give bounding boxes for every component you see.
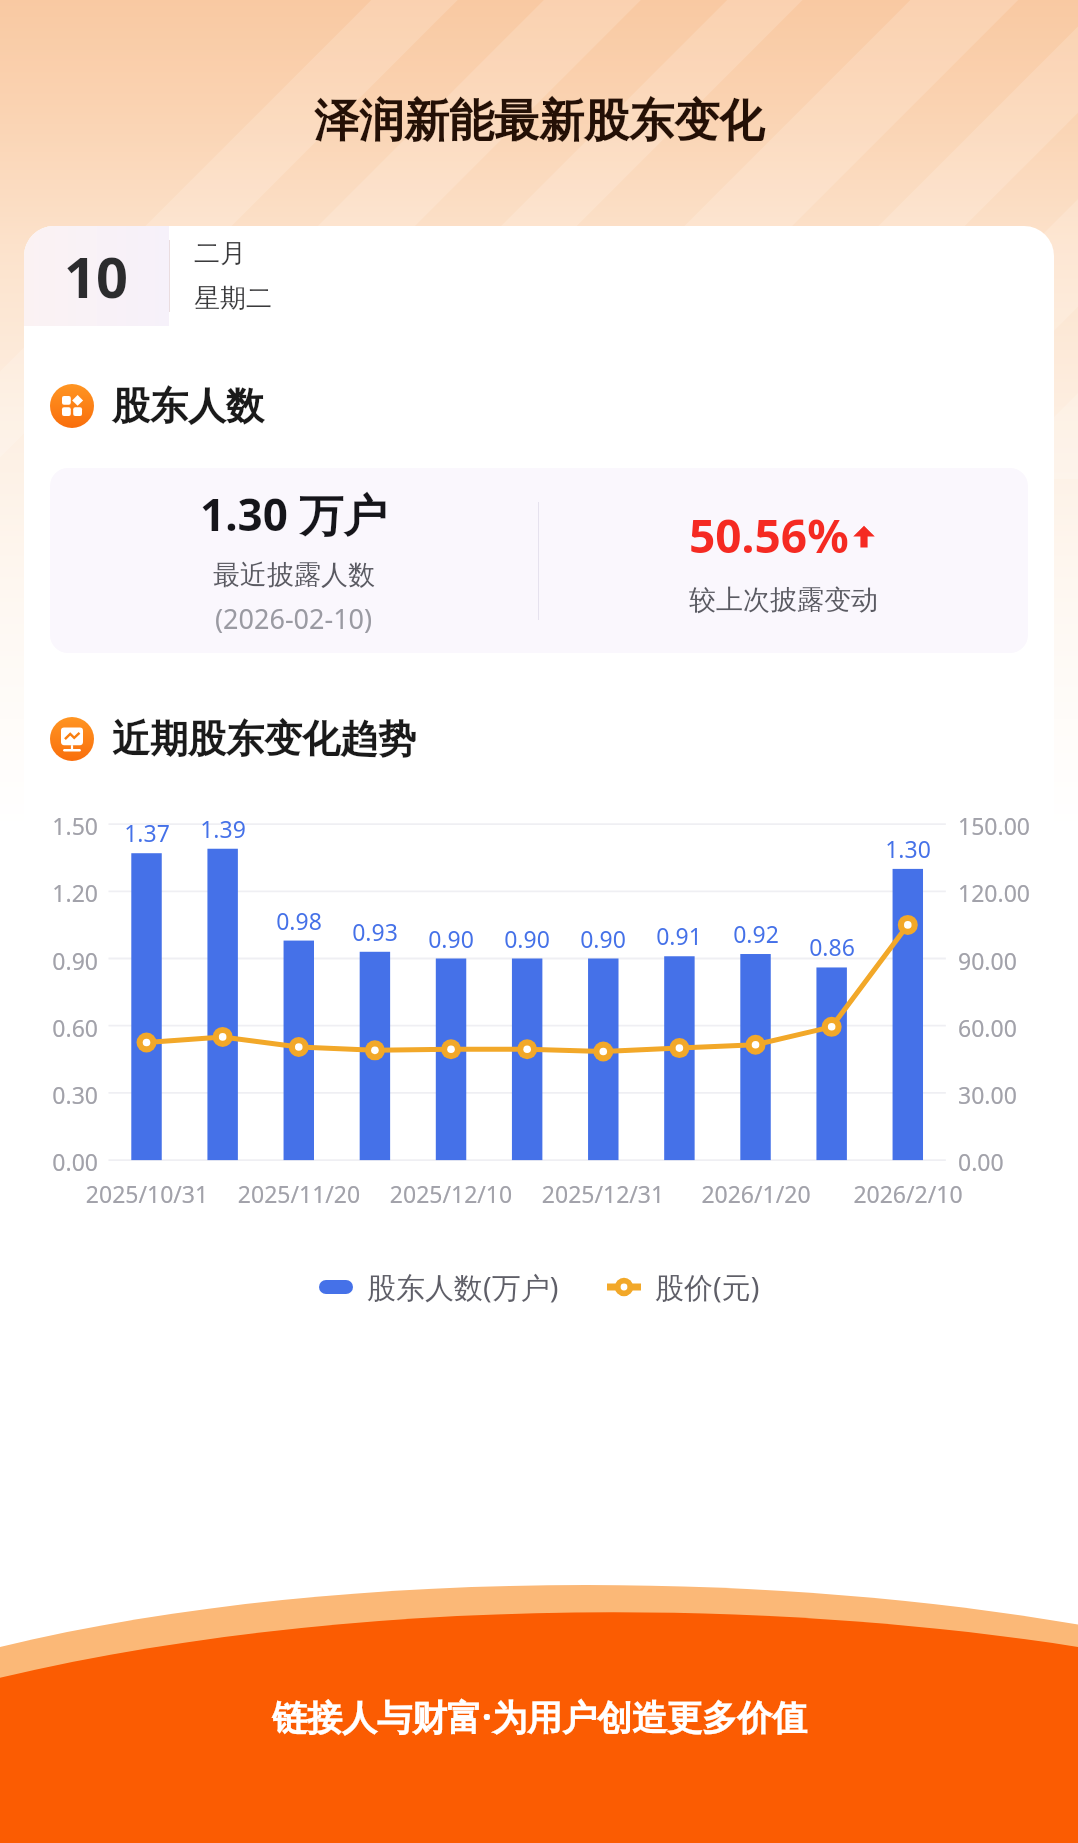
staticText: 1.30	[876, 833, 940, 864]
button[interactable]: Trend chart	[50, 715, 416, 763]
staticText: 0.92	[724, 918, 788, 949]
staticText: 1.30 万户	[200, 484, 388, 544]
other: Trend chart	[50, 717, 94, 761]
staticText: 120.00	[958, 877, 1030, 908]
staticText: 1.37	[115, 817, 179, 848]
staticText: 星期二	[194, 282, 272, 315]
staticText: 二月	[194, 237, 246, 270]
staticText: 0.93	[343, 916, 407, 947]
staticText: 0.90	[495, 923, 559, 954]
button[interactable]: 1.30 万户	[50, 468, 1028, 653]
staticText: 0.91	[647, 920, 711, 951]
staticText: 0.30	[24, 1079, 98, 1110]
staticText: 1.20	[24, 877, 98, 908]
staticText: 0.00	[24, 1146, 98, 1177]
staticText: 0.60	[24, 1012, 98, 1043]
staticText: 2026/1/20	[686, 1178, 826, 1209]
staticText: 30.00	[958, 1079, 1017, 1110]
staticText: 股东人数(万户)	[367, 1267, 559, 1307]
staticText: 2025/12/10	[381, 1178, 521, 1209]
staticText: 0.00	[958, 1146, 1004, 1177]
staticText: 0.90	[24, 945, 98, 976]
staticText: 0.86	[800, 931, 864, 962]
staticText: 1.39	[191, 813, 255, 844]
staticText: 股价(元)	[655, 1267, 760, 1307]
staticText: 近期股东变化趋势	[112, 715, 416, 763]
staticText: 1.50	[24, 810, 98, 841]
staticText: 2026/2/10	[838, 1178, 978, 1209]
staticText: 2025/10/31	[77, 1178, 217, 1209]
staticText: 2025/12/31	[533, 1178, 673, 1209]
staticText: 最近披露人数	[213, 558, 375, 592]
button[interactable]: Shareholder count	[50, 382, 264, 430]
staticText: 150.00	[958, 810, 1030, 841]
staticText: 2025/11/20	[229, 1178, 369, 1209]
staticText: 0.98	[267, 905, 331, 936]
staticText: 较上次披露变动	[689, 583, 878, 617]
staticText: 50.56%	[689, 504, 849, 567]
staticText: 泽润新能最新股东变化	[314, 93, 764, 150]
staticText: 0.90	[571, 923, 635, 954]
other: Shareholder count	[50, 384, 94, 428]
staticText: 10	[64, 238, 129, 314]
staticText: 0.90	[419, 923, 483, 954]
staticText: (2026-02-10)	[215, 600, 373, 637]
staticText: 60.00	[958, 1012, 1017, 1043]
staticText: 链接人与财富·为用户创造更多价值	[272, 1693, 807, 1741]
staticText: 股东人数	[112, 382, 264, 430]
staticText: 90.00	[958, 945, 1017, 976]
